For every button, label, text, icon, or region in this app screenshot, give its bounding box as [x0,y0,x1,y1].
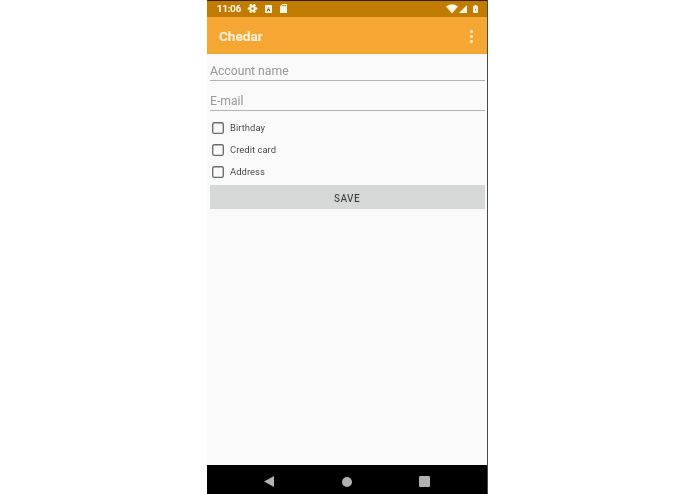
staticText: Chedar [219,28,263,44]
button[interactable]: Recents [407,468,441,494]
button[interactable]: More options [458,19,484,53]
button[interactable]: Back [252,468,286,494]
staticText: Account name [210,64,289,78]
button[interactable]: Credit card [207,139,488,161]
button[interactable]: E-mail [210,94,485,111]
button[interactable]: Account name [210,64,485,81]
staticText: E-mail [210,94,244,108]
staticText: 11:06 [217,3,242,14]
button[interactable]: Home [330,468,364,494]
staticText: Credit card [230,144,277,155]
staticText: Birthday [230,122,265,133]
button[interactable]: Birthday [207,117,488,139]
staticText: SAVE [334,193,361,205]
button[interactable]: SAVE [210,185,485,209]
staticText: Address [230,166,265,177]
button[interactable]: Address [207,161,488,183]
